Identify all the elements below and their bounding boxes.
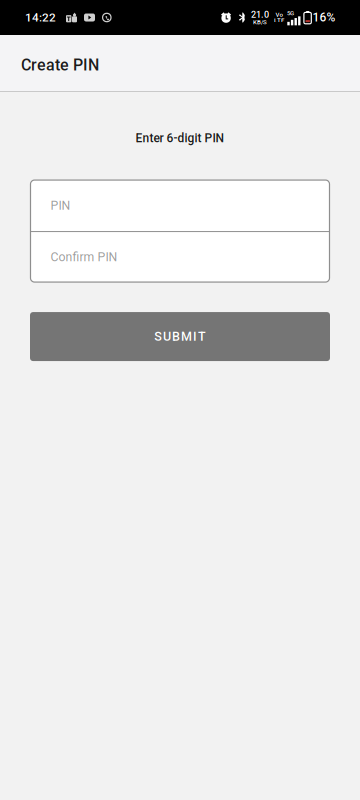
button[interactable]: PIN bbox=[30, 180, 329, 231]
staticText: S bbox=[154, 329, 162, 344]
staticText: T bbox=[198, 329, 206, 344]
staticText: 5G bbox=[287, 10, 294, 17]
staticText: LTE bbox=[274, 17, 284, 24]
staticText: Enter 6-digit PIN bbox=[135, 131, 224, 145]
staticText: M bbox=[181, 329, 192, 344]
staticText: KB/S bbox=[253, 18, 267, 26]
button[interactable]: S bbox=[30, 312, 330, 361]
staticText: 16% bbox=[312, 10, 335, 25]
staticText: 14:22 bbox=[25, 11, 56, 24]
staticText: 21.0 bbox=[251, 9, 269, 20]
staticText: U bbox=[163, 329, 171, 344]
staticText: B bbox=[172, 329, 180, 344]
staticText: PIN bbox=[50, 198, 70, 213]
staticText: Vo bbox=[275, 11, 282, 18]
staticText: Create PIN bbox=[21, 56, 99, 74]
staticText: Confirm PIN bbox=[50, 250, 117, 264]
staticText: I bbox=[193, 329, 197, 344]
button[interactable]: Confirm PIN bbox=[30, 232, 329, 282]
